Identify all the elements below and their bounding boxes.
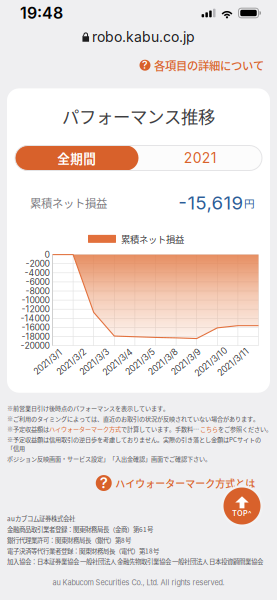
- staticText: 累積ネット損益: [30, 195, 107, 211]
- staticText: こちら: [200, 424, 218, 433]
- staticText: -18000: [21, 331, 49, 342]
- staticText: 2021/3/4: [100, 357, 136, 367]
- staticText: -2000: [25, 258, 49, 269]
- staticText: -20000: [20, 340, 49, 351]
- button[interactable]: 全期間: [15, 145, 138, 170]
- staticText: 2021/3/5: [123, 357, 158, 367]
- staticText: ポジション反映画面・サービス設定」「入出金確認」画面でご確認下さい。: [7, 454, 211, 463]
- button[interactable]: 2021: [138, 145, 262, 170]
- staticText: -14000: [20, 313, 49, 324]
- staticText: 0: [44, 249, 49, 260]
- staticText: -6000: [25, 277, 49, 287]
- button[interactable]: Back to top: [221, 485, 263, 527]
- staticText: 2021/3/3: [77, 357, 112, 367]
- staticText: ハイウォーターマーク方式: [49, 424, 121, 433]
- staticText: ※予定収益額は信用取引の逆日歩を考慮しておりません。実際の引き落とし金額はPCサ…: [7, 435, 261, 453]
- button[interactable]: ?: [139, 57, 264, 73]
- staticText: -4000: [24, 268, 49, 278]
- staticText: 累積ネット損益: [121, 232, 184, 246]
- staticText: 円: [244, 195, 255, 210]
- staticText: 19:48: [20, 3, 63, 23]
- staticText: で計算しています。手数料については: [121, 424, 200, 433]
- staticText: ?: [142, 59, 148, 71]
- staticText: パフォーマンス推移: [62, 103, 215, 128]
- staticText: 金融商品取引業者登録：関東財務局長（金商）第61号: [7, 525, 153, 534]
- staticText: TOP^: [232, 509, 252, 518]
- staticText: ?: [100, 474, 108, 492]
- staticText: ※ご利用のタイミングによっては、直近のお取引の状況が反映されていない場合がありま…: [7, 414, 259, 423]
- staticText: 各項目の詳細について: [154, 57, 264, 73]
- staticText: -8000: [25, 286, 49, 296]
- staticText: au Kabucom Securities Co., Ltd. All righ…: [52, 578, 224, 587]
- staticText: 2021: [184, 149, 217, 166]
- staticText: 電子決済等代行業者登録：関東財務局長（電代）第18号: [7, 546, 159, 555]
- staticText: 2021/3/1: [31, 357, 65, 367]
- staticText: -10000: [21, 295, 49, 305]
- staticText: 銀行代理業許可：関東財務局長（銀代）第8号: [7, 535, 131, 545]
- staticText: -16000: [21, 322, 49, 333]
- staticText: -15,619: [178, 191, 243, 214]
- staticText: 2021/3/10: [191, 357, 230, 367]
- button[interactable]: ?: [96, 474, 255, 492]
- staticText: auカブコム証券株式会社: [7, 514, 75, 523]
- staticText: をご参照ください。: [218, 424, 272, 433]
- staticText: 2021/3/2: [54, 357, 89, 367]
- staticText: ハイウォーターマーク方式とは: [115, 476, 255, 490]
- staticText: -12000: [21, 304, 49, 314]
- staticText: 加入協会：日本証券業協会 一般社団法人 金融先物取引業協会 一般社団法人 日本投…: [7, 557, 263, 566]
- staticText: 2021/3/11: [214, 357, 252, 367]
- staticText: ※予定収益額は: [7, 424, 49, 433]
- staticText: 2021/3/8: [145, 357, 180, 367]
- staticText: robo.kabu.co.jp: [92, 28, 195, 45]
- staticText: 全期間: [57, 149, 96, 167]
- staticText: 2021/3/9: [168, 357, 203, 367]
- staticText: ※前営業日引け後時点のパフォーマンスを表示しています。: [7, 404, 169, 413]
